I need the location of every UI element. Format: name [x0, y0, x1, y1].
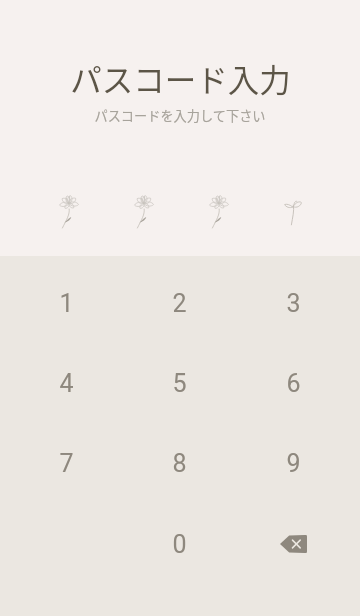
button[interactable]: 7: [30, 437, 102, 489]
staticText: 0: [172, 530, 187, 559]
button[interactable]: 1: [30, 277, 102, 329]
staticText: 4: [59, 369, 74, 398]
staticText: 5: [172, 369, 187, 398]
button[interactable]: 0: [143, 518, 215, 570]
staticText: パスコードを入力して下さい: [94, 106, 266, 125]
button[interactable]: Delete last digit: [257, 518, 329, 570]
staticText: 6: [286, 369, 301, 398]
staticText: 7: [59, 449, 74, 478]
staticText: 3: [286, 289, 301, 318]
staticText: パスコード入力: [70, 55, 291, 101]
button[interactable]: 4: [30, 357, 102, 409]
button[interactable]: 5: [143, 357, 215, 409]
button[interactable]: 3: [257, 277, 329, 329]
staticText: 9: [286, 449, 301, 478]
button[interactable]: 6: [257, 357, 329, 409]
button[interactable]: 2: [143, 277, 215, 329]
button[interactable]: 8: [143, 437, 215, 489]
button[interactable]: 9: [257, 437, 329, 489]
staticText: 1: [59, 289, 74, 318]
staticText: 2: [172, 289, 187, 318]
staticText: 8: [172, 449, 187, 478]
